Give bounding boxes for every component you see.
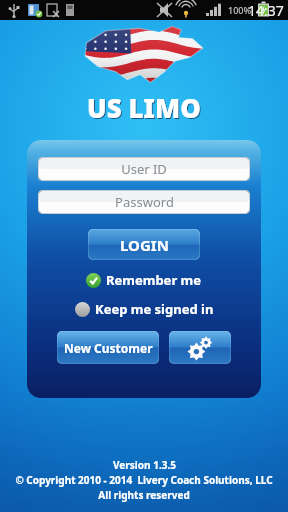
staticText: US LIMO: [88, 91, 202, 126]
button[interactable]: Remember me: [84, 270, 204, 290]
staticText: User ID: [121, 160, 167, 178]
button[interactable]: User ID: [38, 157, 250, 181]
button[interactable]: New Customer: [57, 331, 159, 364]
staticText: New Customer: [64, 340, 153, 356]
staticText: Keep me signed in: [95, 300, 214, 318]
staticText: US LIMO: [87, 90, 201, 125]
staticText: 14:37: [248, 1, 284, 20]
staticText: 100%: [228, 4, 252, 16]
button[interactable]: LOGIN: [88, 229, 200, 260]
staticText: LOGIN: [120, 235, 169, 255]
button[interactable]: Keep me signed in: [73, 299, 216, 319]
staticText: Password: [115, 193, 174, 211]
staticText: Version 1.3.5: [113, 458, 176, 472]
staticText: © Copyright 2010 - 2014 Livery Coach Sol…: [15, 473, 273, 487]
staticText: All rights reserved: [98, 488, 190, 502]
button[interactable]: Settings: [169, 331, 231, 364]
staticText: Remember me: [106, 271, 202, 289]
button[interactable]: Password: [38, 190, 250, 214]
